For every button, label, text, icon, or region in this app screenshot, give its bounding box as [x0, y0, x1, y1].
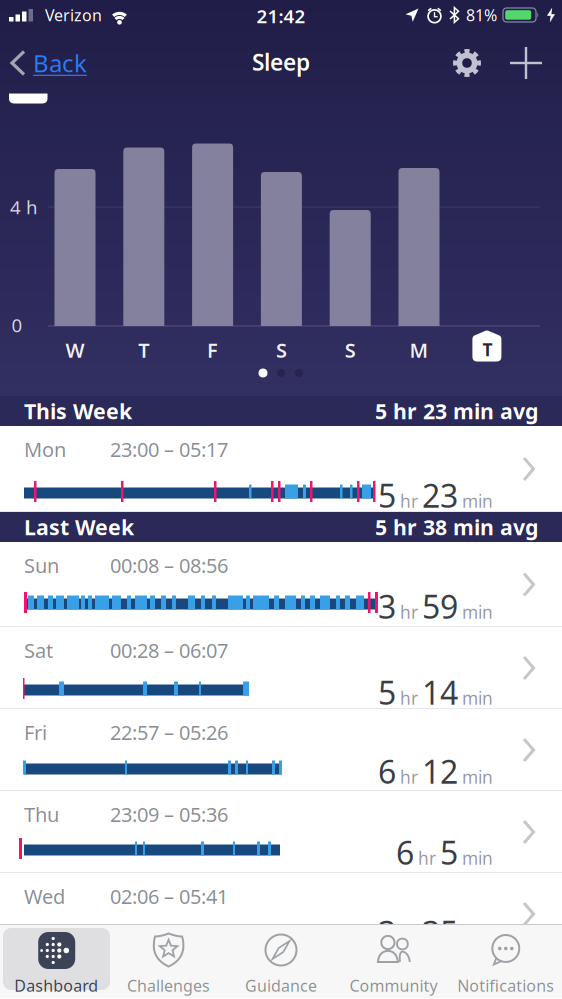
staticText: Last Week [24, 513, 134, 541]
staticText: min [462, 686, 493, 709]
staticText: S [345, 337, 356, 363]
staticText: Thu [24, 801, 59, 828]
staticText: 12 [422, 750, 458, 792]
staticText: T [482, 338, 492, 361]
staticText: Sat [24, 637, 53, 664]
staticText: min [462, 846, 493, 869]
staticText: hr [400, 686, 418, 709]
staticText: 4 h [10, 195, 38, 219]
staticText: Wed [24, 883, 65, 910]
staticText: Challenges [127, 975, 210, 996]
button[interactable]: Back [0, 47, 87, 79]
staticText: Community [349, 975, 437, 996]
staticText: T [138, 337, 149, 363]
staticText: Guidance [245, 975, 317, 996]
staticText: 6 [378, 750, 396, 792]
staticText: hr [418, 846, 436, 869]
staticText: Back [33, 47, 87, 79]
staticText: 5 hr 38 min avg [375, 513, 538, 541]
button[interactable]: Thu [0, 791, 562, 873]
staticText: Sun [24, 552, 59, 579]
staticText: M [409, 337, 428, 363]
staticText: Mon [24, 436, 66, 463]
staticText: 5 hr 23 min avg [375, 397, 538, 425]
staticText: 5 [378, 474, 396, 516]
button[interactable]: Dashboard [0, 931, 112, 999]
staticText: 35 [422, 911, 458, 953]
staticText: 0 [11, 313, 22, 337]
staticText: 22:57 – 05:26 [110, 719, 228, 746]
button[interactable]: Guidance [225, 931, 337, 999]
button[interactable]: Settings [452, 48, 482, 78]
staticText: 5 [440, 831, 458, 873]
staticText: hr [400, 926, 418, 949]
staticText: min [462, 600, 493, 623]
button[interactable]: Challenges [112, 931, 225, 999]
button[interactable]: Wed [0, 873, 562, 925]
staticText: hr [400, 489, 418, 512]
staticText: 23 [422, 474, 458, 516]
staticText: 3 [378, 585, 396, 627]
staticText: 3 [378, 911, 396, 953]
button[interactable]: Today [472, 330, 502, 362]
staticText: 00:08 – 08:56 [110, 552, 228, 579]
staticText: min [462, 926, 493, 949]
button[interactable]: Add [510, 47, 542, 79]
staticText: Verizon [45, 4, 102, 26]
staticText: Dashboard [14, 975, 98, 996]
staticText: W [65, 337, 84, 363]
staticText: hr [400, 600, 418, 623]
button[interactable]: Mon [0, 426, 562, 512]
button[interactable]: Fri [0, 709, 562, 791]
staticText: 59 [422, 585, 458, 627]
button[interactable]: Notifications [450, 931, 562, 999]
staticText: 14 [422, 671, 458, 713]
button[interactable]: Sat [0, 627, 562, 709]
staticText: 23:09 – 05:36 [110, 801, 228, 828]
button[interactable]: Community [337, 931, 450, 999]
staticText: 81% [466, 4, 497, 26]
staticText: Sleep [252, 47, 310, 77]
staticText: min [462, 489, 493, 512]
staticText: This Week [24, 397, 132, 425]
button[interactable]: Sun [0, 542, 562, 627]
staticText: 5 [378, 671, 396, 713]
staticText: Fri [24, 719, 47, 746]
staticText: 21:42 [256, 4, 305, 28]
staticText: S [276, 337, 287, 363]
staticText: F [207, 337, 218, 363]
staticText: Notifications [457, 975, 554, 996]
staticText: min [462, 765, 493, 788]
staticText: 02:06 – 05:41 [110, 883, 228, 910]
staticText: 23:00 – 05:17 [110, 436, 228, 463]
staticText: hr [400, 765, 418, 788]
staticText: 6 [396, 831, 414, 873]
staticText: 00:28 – 06:07 [110, 637, 228, 664]
